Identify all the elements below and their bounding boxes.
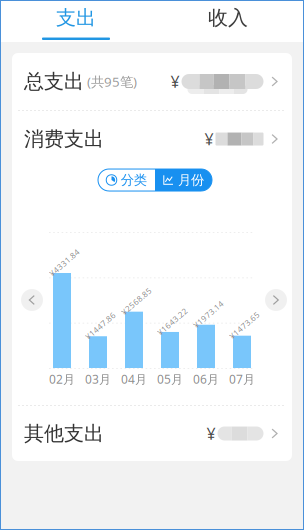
button[interactable]: 月份	[155, 169, 212, 191]
staticText: ¥	[170, 71, 179, 92]
staticText: 04月	[121, 371, 147, 387]
staticText: 分类	[121, 172, 147, 188]
staticText: 03月	[85, 371, 111, 387]
staticText: ¥1643.22	[154, 316, 191, 327]
button[interactable]: 支出	[0, 0, 152, 42]
staticText: 总支出	[24, 69, 84, 94]
staticText: 其他支出	[24, 421, 104, 446]
staticText: ¥2568.85	[118, 296, 155, 306]
staticText: ¥1973.14	[190, 309, 227, 319]
staticText: 05月	[157, 371, 183, 387]
staticText: ¥	[206, 423, 215, 444]
button[interactable]: 分类	[98, 169, 155, 191]
staticText: 月份	[178, 172, 204, 188]
staticText: 06月	[193, 371, 219, 387]
button[interactable]: 收入	[152, 0, 304, 42]
staticText: 支出	[56, 5, 96, 30]
staticText: (共95笔)	[84, 73, 137, 90]
button[interactable]: Previous months	[19, 287, 45, 313]
button[interactable]: 总支出	[12, 53, 292, 110]
staticText: ¥1473.65	[226, 320, 263, 330]
staticText: 07月	[229, 371, 255, 387]
staticText: ¥4331.84	[46, 257, 83, 268]
staticText: 02月	[49, 371, 75, 387]
staticText: 消费支出	[24, 127, 104, 151]
staticText: ¥1447.86	[82, 320, 119, 331]
staticText: 收入	[208, 5, 248, 30]
staticText: ¥	[204, 128, 213, 150]
button[interactable]: Next months	[263, 287, 289, 313]
button[interactable]: 消费支出	[12, 111, 292, 167]
button[interactable]: 其他支出	[12, 406, 292, 461]
